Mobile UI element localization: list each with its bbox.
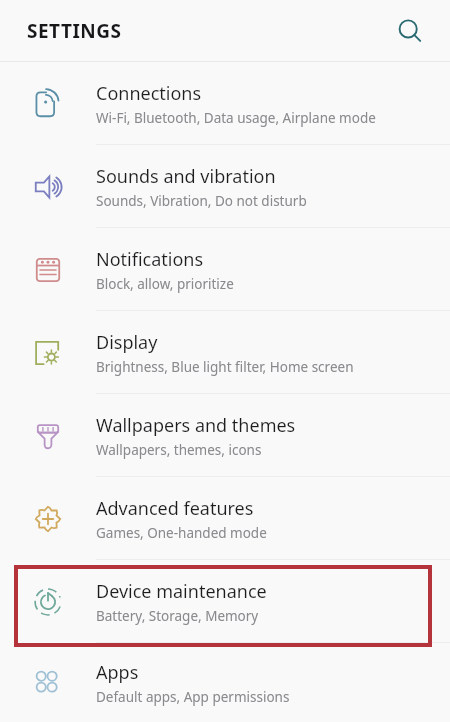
staticText: Sounds, Vibration, Do not disturb [96,192,307,210]
staticText: Sounds and vibration [96,164,276,189]
staticText: Wallpapers and themes [96,413,296,438]
staticText: Brightness, Blue light filter, Home scre… [96,358,354,376]
button[interactable]: Advanced features [0,477,450,560]
button[interactable]: Wallpapers and themes [0,394,450,477]
staticText: Default apps, App permissions [96,688,290,706]
staticText: SETTINGS [27,18,122,44]
button[interactable]: Apps [0,643,450,722]
staticText: Block, allow, prioritize [96,275,234,293]
button[interactable]: Sounds and vibration [0,145,450,228]
staticText: Battery, Storage, Memory [96,607,259,625]
button[interactable]: Notifications [0,228,450,311]
staticText: Games, One-handed mode [96,524,267,542]
staticText: Display [96,330,158,355]
staticText: Wallpapers, themes, icons [96,441,262,459]
button[interactable]: Device maintenance [0,560,450,643]
staticText: Connections [96,81,202,106]
button[interactable]: Display [0,311,450,394]
staticText: Advanced features [96,496,254,521]
staticText: Wi-Fi, Bluetooth, Data usage, Airplane m… [96,109,376,127]
button[interactable]: Search [388,9,432,53]
staticText: Device maintenance [96,579,267,604]
staticText: Apps [96,660,139,685]
staticText: Notifications [96,247,204,272]
button[interactable]: Connections [0,62,450,145]
